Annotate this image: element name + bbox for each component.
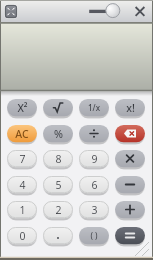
button[interactable]: Divide: [79, 125, 109, 145]
staticText: 4: [19, 178, 26, 192]
staticText: 8: [55, 152, 62, 166]
button[interactable]: 2: [43, 201, 73, 221]
button[interactable]: 4: [7, 176, 37, 196]
button[interactable]: Close: [133, 4, 147, 18]
staticText: ( ): [90, 230, 98, 241]
staticText: 6: [91, 178, 98, 192]
staticText: 1/x: [88, 102, 100, 113]
button[interactable]: AC: [7, 125, 37, 145]
staticText: 1: [19, 203, 26, 217]
button[interactable]: 8: [43, 150, 73, 170]
button[interactable]: Subtract: [115, 176, 145, 196]
button[interactable]: Multiply: [115, 150, 145, 170]
button[interactable]: 5: [43, 176, 73, 196]
staticText: 3: [91, 203, 98, 217]
button[interactable]: 7: [7, 150, 37, 170]
button[interactable]: X²: [7, 99, 37, 119]
staticText: AC: [15, 127, 29, 141]
button[interactable]: x!: [115, 99, 145, 119]
staticText: 2: [55, 203, 62, 217]
button[interactable]: 6: [79, 176, 109, 196]
staticText: %: [54, 127, 63, 141]
button[interactable]: 9: [79, 150, 109, 170]
button[interactable]: Square root: [43, 99, 73, 119]
button[interactable]: Equals: [115, 227, 145, 247]
button[interactable]: %: [43, 125, 73, 145]
staticText: 9: [91, 152, 98, 166]
button[interactable]: 0: [7, 227, 37, 247]
staticText: 0: [19, 229, 26, 243]
button[interactable]: 1: [7, 201, 37, 221]
button[interactable]: Add: [115, 201, 145, 221]
button[interactable]: Decimal point: [43, 227, 73, 247]
staticText: 5: [55, 178, 62, 192]
button[interactable]: ( ): [79, 227, 109, 247]
button[interactable]: Expand window: [5, 5, 17, 18]
button[interactable]: Backspace: [115, 125, 145, 145]
button[interactable]: 1/x: [79, 99, 109, 119]
button[interactable]: 3: [79, 201, 109, 221]
button[interactable]: Opacity slider: [86, 1, 122, 21]
staticText: 7: [19, 152, 26, 166]
staticText: X²: [17, 101, 28, 115]
staticText: x!: [126, 101, 135, 115]
